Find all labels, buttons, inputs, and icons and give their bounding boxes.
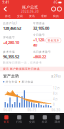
staticText: 参考市值 [3, 50, 15, 53]
button[interactable]: 资金流水 [46, 38, 61, 43]
button[interactable]: 持仓 [2, 14, 14, 18]
button[interactable]: Search [51, 7, 56, 11]
staticText: 交易 [17, 14, 23, 18]
staticText: 资金流水 [47, 39, 59, 42]
staticText: 06-30 [51, 108, 60, 112]
staticText: 社区 [42, 120, 48, 123]
staticText: 近20日 [51, 74, 61, 78]
button[interactable]: 首页 [0, 114, 13, 125]
staticText: 可用资金 [33, 22, 45, 25]
button[interactable]: 交易 [14, 14, 26, 18]
staticText: 2024-06-30 [21, 10, 39, 13]
staticText: 12万 [53, 86, 60, 90]
staticText: 理财 [41, 14, 47, 18]
button[interactable]: 我的 [51, 114, 64, 125]
staticText: 行情 [16, 120, 22, 123]
staticText: 持仓 [5, 14, 11, 18]
staticText: 128,460.52 [3, 26, 21, 31]
staticText: 数据每日更新一次，仅供参考 [3, 61, 42, 64]
staticText: 4万 [53, 97, 58, 101]
button[interactable]: 理财 [38, 14, 50, 18]
staticText: 账户数据截至昨日收盘 [10, 67, 40, 71]
button[interactable]: 我的 [50, 14, 62, 18]
staticText: 总资产(元) [3, 21, 17, 25]
staticText: 今日盈亏 [33, 33, 45, 36]
button[interactable]: Back [2, 6, 8, 12]
button[interactable]: 交易 [26, 114, 38, 125]
staticText: 资产走势 [3, 74, 19, 79]
staticText: 8万 [53, 92, 58, 95]
staticText: 累计收益 [21, 80, 33, 83]
button[interactable]: 社区 [38, 114, 51, 125]
staticText: 06-01 [3, 108, 12, 112]
staticText: 提示 [3, 67, 9, 71]
staticText: 资讯 [29, 14, 35, 18]
staticText: +1,120.40 [33, 37, 45, 48]
button[interactable]: 资讯 [26, 14, 38, 18]
staticText: 06-15 [27, 108, 36, 112]
staticText: 持仓市值 [6, 80, 18, 83]
staticText: 32,105.00 [33, 25, 49, 31]
button[interactable]: More [56, 7, 61, 11]
staticText: 首页 [3, 120, 9, 123]
staticText: 4G [53, 1, 57, 4]
staticText: 我的 [53, 14, 59, 18]
button[interactable]: 行情 [13, 114, 26, 125]
staticText: 账户总览 [22, 5, 38, 9]
staticText: 当日参考盈亏 [33, 50, 51, 53]
staticText: 浮动盈亏 [3, 36, 15, 39]
staticText: 9:41 [2, 1, 9, 4]
staticText: +860.22 [33, 54, 46, 59]
staticText: 交易 [29, 120, 35, 123]
staticText: +4,280.10 [3, 40, 19, 45]
staticText: 我的 [55, 120, 61, 123]
staticText: 96,355.52 [3, 54, 19, 59]
staticText: 0 [53, 103, 55, 106]
